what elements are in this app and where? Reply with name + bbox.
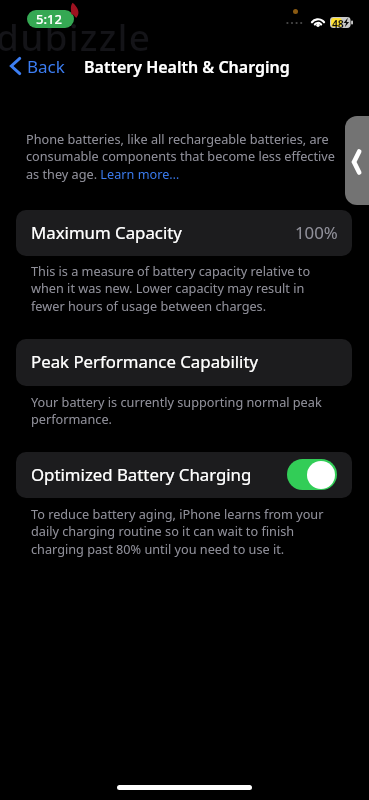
staticText: 100%: [295, 221, 338, 244]
button[interactable]: Optimized Battery Charging toggle: [287, 459, 337, 490]
button[interactable]: Maximum Capacity: [16, 210, 352, 256]
staticText: This is a measure of battery capacity re…: [31, 262, 337, 315]
button[interactable]: Peak Performance Capability: [16, 339, 352, 386]
staticText: 5:12: [36, 10, 62, 28]
button[interactable]: Learn more: [100, 166, 178, 182]
staticText: 48: [332, 17, 344, 28]
staticText: To reduce battery aging, iPhone learns f…: [31, 505, 337, 558]
staticText: Optimized Battery Charging: [31, 463, 252, 486]
button[interactable]: Optimized Battery Charging: [16, 452, 352, 498]
button[interactable]: Back: [5, 53, 65, 79]
staticText: dubizzle: [0, 11, 152, 61]
staticText: Back: [27, 55, 65, 78]
staticText: Your battery is currently supporting nor…: [31, 393, 337, 428]
staticText: Phone batteries, like all rechargeable b…: [26, 130, 338, 183]
staticText: Maximum Capacity: [31, 221, 182, 244]
staticText: Battery Health & Charging: [84, 56, 290, 78]
staticText: Peak Performance Capability: [31, 350, 259, 373]
button[interactable]: Back: [345, 116, 369, 205]
